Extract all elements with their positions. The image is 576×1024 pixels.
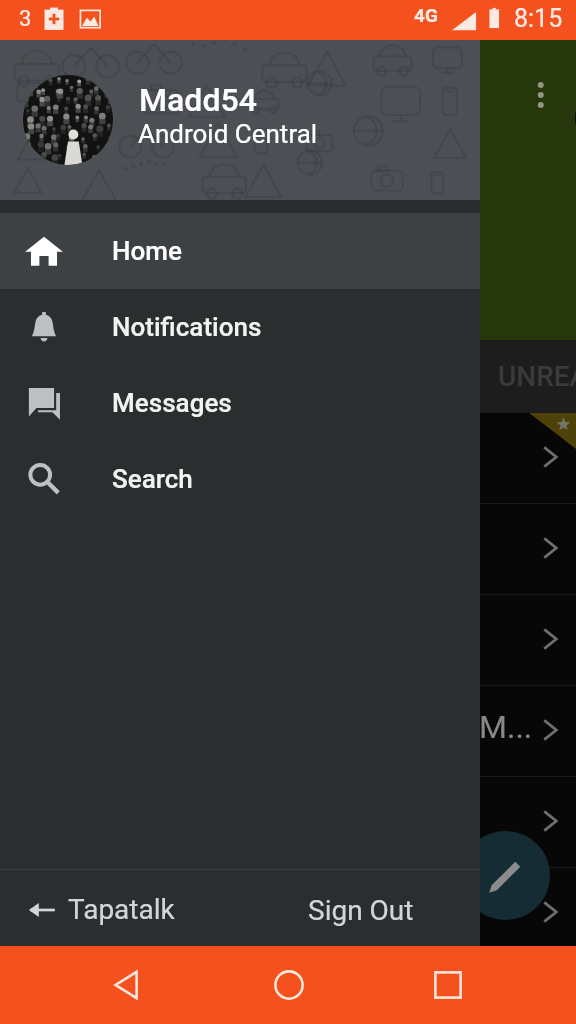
button[interactable] — [0, 412, 576, 503]
button[interactable]: Tapatalk — [16, 876, 189, 944]
staticText: Messages — [112, 388, 232, 418]
staticText: 8:15 — [514, 4, 563, 33]
button[interactable]: Home — [0, 213, 480, 289]
staticText: Sign Out — [308, 894, 414, 927]
staticText: 3 — [19, 6, 32, 32]
staticText: Notifications — [112, 312, 262, 342]
button[interactable]: Home — [249, 946, 329, 1024]
button[interactable]: M... — [0, 685, 576, 776]
button[interactable]: Recents — [408, 946, 488, 1024]
button[interactable]: Sign Out — [294, 876, 428, 944]
staticText: Search — [112, 464, 193, 494]
staticText: Android Central — [138, 119, 318, 149]
button[interactable] — [0, 867, 576, 958]
button[interactable]: Compose — [461, 831, 550, 920]
button[interactable] — [0, 776, 576, 867]
button[interactable] — [0, 594, 576, 685]
button[interactable] — [0, 958, 576, 1024]
button[interactable]: Back — [87, 946, 167, 1024]
button[interactable]: Notifications — [0, 289, 480, 365]
button[interactable]: Search — [0, 441, 480, 517]
staticText: Madd54 — [139, 81, 257, 119]
staticText: Tapatalk — [68, 893, 175, 926]
button[interactable] — [0, 503, 576, 594]
staticText: Home — [112, 236, 182, 266]
staticText: M... — [479, 708, 533, 746]
staticText: 4G — [414, 4, 438, 26]
button[interactable]: More options — [516, 51, 566, 139]
button[interactable]: Messages — [0, 365, 480, 441]
staticText: UNREAD — [498, 360, 576, 393]
